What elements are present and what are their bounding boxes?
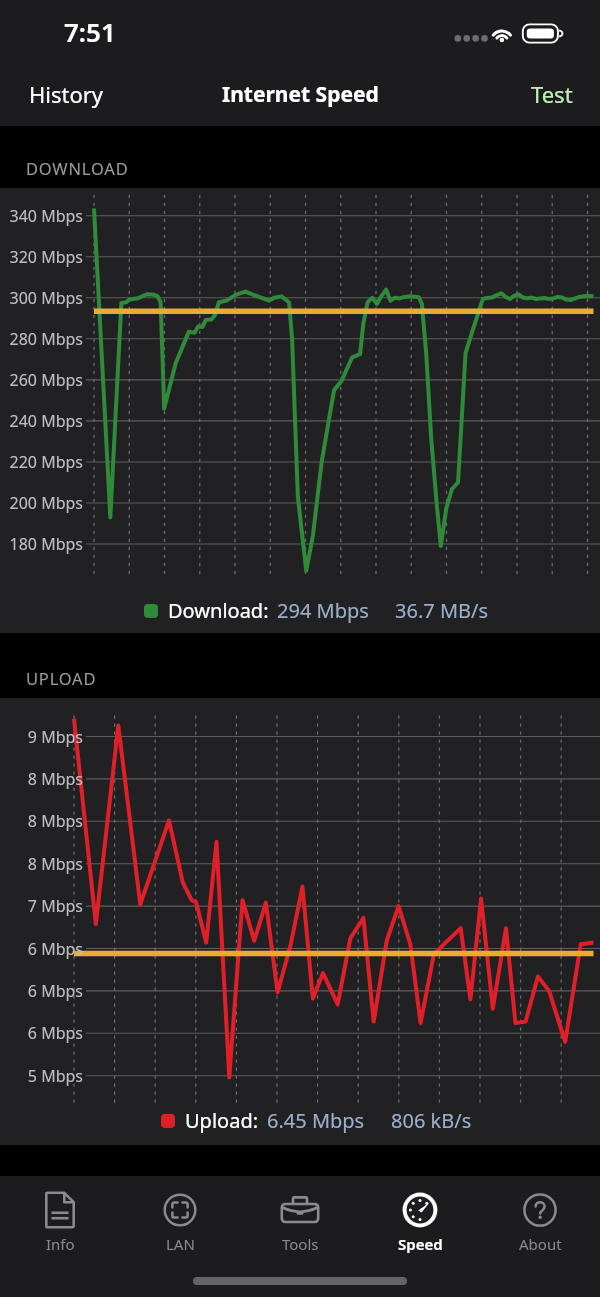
staticText: 294 Mbps (277, 597, 369, 624)
staticText: Info (46, 1234, 75, 1254)
staticText: 8 Mbps (0, 853, 83, 875)
staticText: 6 Mbps (0, 980, 83, 1002)
staticText: 806 kB/s (391, 1107, 472, 1134)
staticText: Test (531, 79, 573, 109)
staticText: History (29, 79, 104, 109)
staticText: 8 Mbps (0, 768, 83, 790)
button[interactable]: History (0, 62, 133, 126)
staticText: Tools (282, 1234, 319, 1254)
staticText: 9 Mbps (0, 726, 83, 748)
staticText: 280 Mbps (0, 328, 83, 350)
staticText: 340 Mbps (0, 205, 83, 227)
staticText: 200 Mbps (0, 492, 83, 514)
staticText: 6.45 Mbps (267, 1107, 365, 1134)
staticText: Internet Speed (222, 80, 379, 109)
staticText: Upload: (185, 1107, 259, 1134)
staticText: 180 Mbps (0, 533, 83, 555)
button[interactable]: LAN (120, 1176, 240, 1267)
staticText: 6 Mbps (0, 938, 83, 960)
staticText: 36.7 MB/s (395, 597, 489, 624)
button[interactable]: About (480, 1176, 600, 1267)
staticText: About (519, 1234, 562, 1254)
staticText: Speed (398, 1234, 443, 1254)
staticText: 220 Mbps (0, 451, 83, 473)
staticText: 260 Mbps (0, 369, 83, 391)
staticText: 240 Mbps (0, 410, 83, 432)
staticText: 8 Mbps (0, 810, 83, 832)
staticText: LAN (166, 1234, 195, 1254)
staticText: 320 Mbps (0, 246, 83, 268)
staticText: UPLOAD (26, 667, 97, 689)
staticText: 6 Mbps (0, 1022, 83, 1044)
staticText: 300 Mbps (0, 287, 83, 309)
staticText: Download: (168, 597, 269, 624)
button[interactable]: Tools (240, 1176, 360, 1267)
staticText: DOWNLOAD (26, 157, 129, 179)
button[interactable]: Info (0, 1176, 120, 1267)
button[interactable]: Test (504, 62, 600, 126)
staticText: 7:51 (64, 14, 116, 49)
button[interactable]: Speed (360, 1176, 480, 1267)
staticText: 5 Mbps (0, 1065, 83, 1087)
staticText: 7 Mbps (0, 895, 83, 917)
